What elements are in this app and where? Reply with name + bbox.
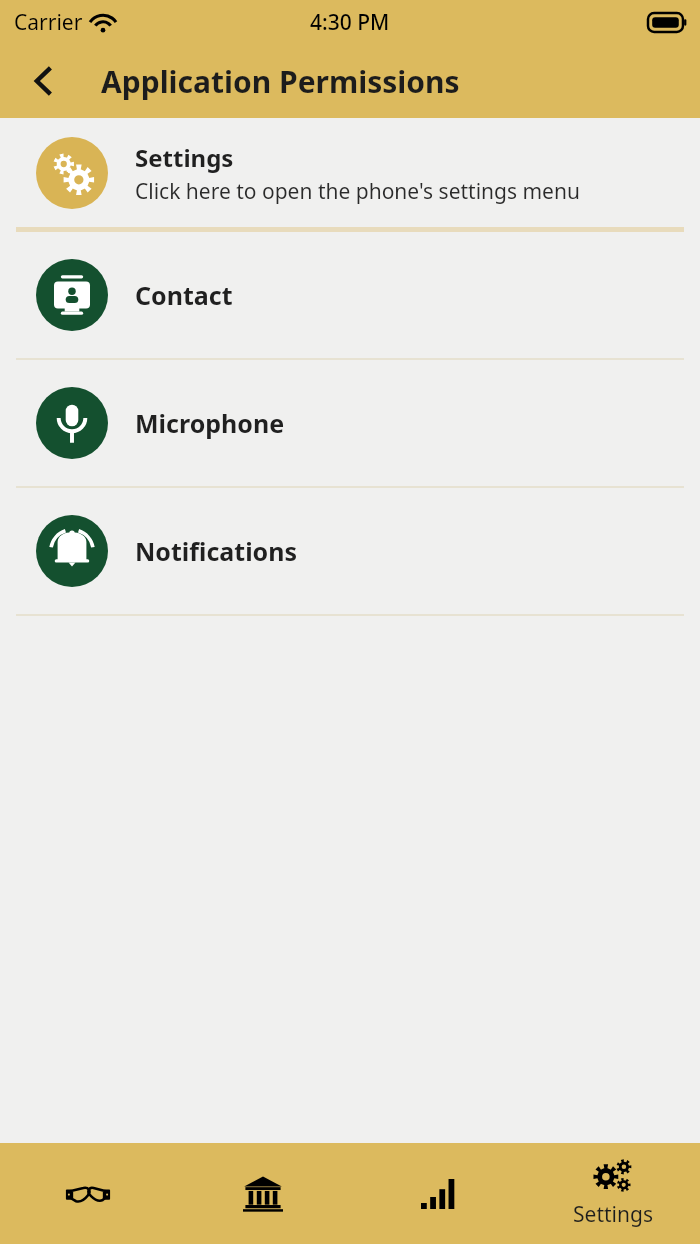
staticText: Click here to open the phone's settings … <box>135 177 580 206</box>
button[interactable]: Contact <box>0 232 700 360</box>
button[interactable]: Bank <box>175 1143 350 1244</box>
staticText: 4:30 PM <box>310 8 390 37</box>
button[interactable]: Microphone <box>0 360 700 488</box>
staticText: Carrier <box>14 8 83 37</box>
staticText: Microphone <box>135 406 285 440</box>
button[interactable]: Back <box>22 59 66 103</box>
staticText: Contact <box>135 278 233 312</box>
staticText: Application Permissions <box>101 61 460 102</box>
button[interactable]: Partners <box>0 1143 175 1244</box>
button[interactable]: Settings <box>525 1143 700 1244</box>
staticText: Settings <box>135 141 234 174</box>
button[interactable]: Settings <box>0 119 700 232</box>
button[interactable]: Notifications <box>0 488 700 616</box>
staticText: Settings <box>573 1200 653 1229</box>
staticText: Notifications <box>135 534 298 568</box>
button[interactable]: Signal <box>350 1143 525 1244</box>
